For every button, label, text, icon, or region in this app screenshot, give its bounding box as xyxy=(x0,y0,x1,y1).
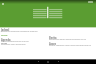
button[interactable]: Recent apps xyxy=(53,59,63,64)
staticText: Jadwal xyxy=(1,28,10,31)
staticText: Arsip xyxy=(1,42,7,45)
button[interactable]: Arsip xyxy=(1,42,31,46)
button[interactable]: Agenda xyxy=(1,38,39,43)
button[interactable]: Navigate up xyxy=(0,1,5,6)
button[interactable]: Jadwal xyxy=(1,28,39,33)
staticText: Detail pengumuman hari ini xyxy=(1,40,29,43)
staticText: Acara xyxy=(49,42,57,45)
staticText: LIHAT xyxy=(1,34,8,37)
button[interactable]: Acara xyxy=(49,42,93,46)
button[interactable]: Home xyxy=(43,59,53,64)
button[interactable]: LIHAT xyxy=(1,34,8,37)
staticText: Dokumen lama tersimpan xyxy=(1,43,26,46)
staticText: Berita xyxy=(49,36,57,39)
staticText: Daftar kegiatan yang akan berlangsung na xyxy=(49,44,92,47)
staticText: Ringkasan berita penting pekan ini ya xyxy=(49,38,87,41)
button[interactable]: Berita xyxy=(49,36,93,40)
staticText: Informasi lengkap mengenai agenda xyxy=(1,30,38,33)
staticText: Agenda xyxy=(1,38,11,41)
button[interactable]: Back xyxy=(33,59,43,64)
